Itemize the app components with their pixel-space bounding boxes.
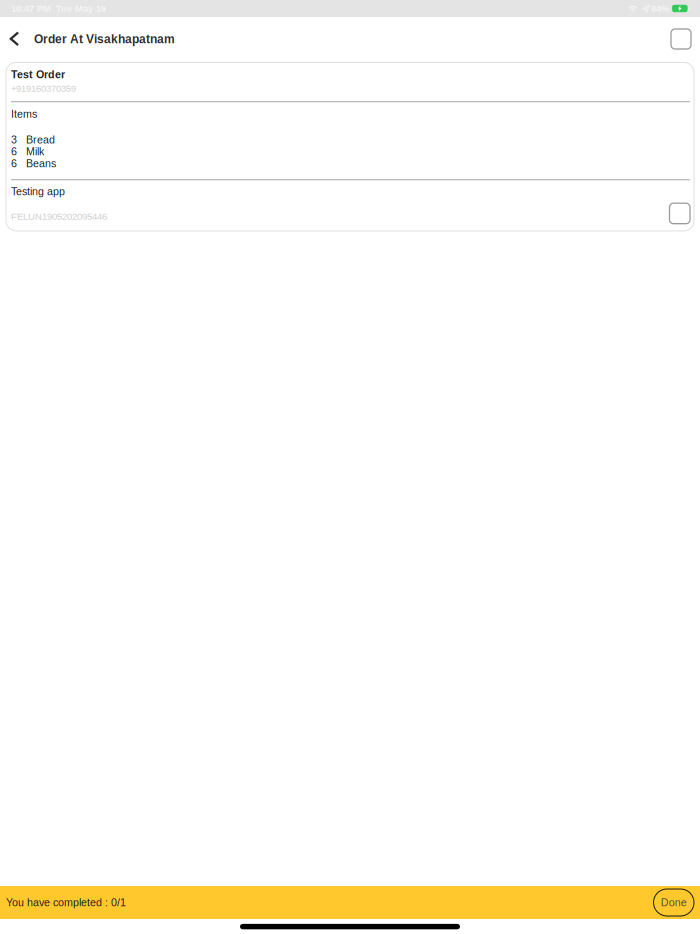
staticText: Test Order (11, 68, 65, 80)
staticText: Bread (26, 134, 55, 146)
staticText: You have completed : 0/1 (6, 896, 126, 908)
staticText: Testing app (11, 186, 65, 198)
staticText: 84% (651, 3, 669, 14)
button[interactable]: Back (2, 19, 27, 59)
button[interactable]: Mark order complete (669, 203, 690, 224)
staticText: 6 (11, 146, 17, 158)
staticText: 10:47 PM (11, 3, 51, 14)
staticText: 6 (11, 157, 17, 169)
staticText: Beans (26, 157, 56, 169)
staticText: 3 (11, 134, 17, 146)
staticText: Order At Visakhapatnam (34, 32, 175, 46)
button[interactable]: Done (653, 889, 694, 916)
staticText: Items (11, 108, 37, 120)
staticText: +919160370359 (11, 83, 76, 94)
staticText: FELUN1905202095446 (11, 211, 107, 222)
button[interactable]: Select all (667, 19, 695, 59)
staticText: Tue May 19 (56, 3, 106, 14)
staticText: Done (661, 896, 687, 908)
staticText: Milk (26, 146, 44, 158)
